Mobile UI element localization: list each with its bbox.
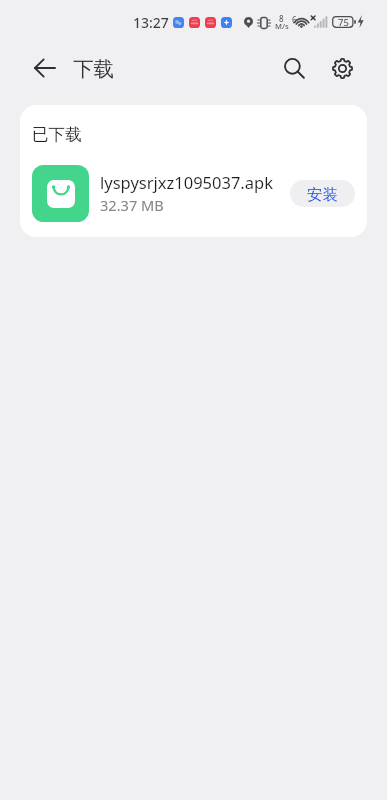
staticText: 安装: [307, 185, 338, 205]
staticText: 6: [292, 14, 297, 25]
staticText: 下载: [73, 56, 114, 82]
staticText: 已下载: [32, 124, 82, 145]
staticText: lyspysrjxz1095037.apk: [100, 171, 273, 193]
button[interactable]: Search: [272, 47, 316, 91]
button[interactable]: Settings: [320, 46, 364, 90]
button[interactable]: Back: [22, 46, 66, 90]
staticText: 13:27: [133, 13, 169, 32]
staticText: M/s: [275, 21, 289, 31]
staticText: 32.37 MB: [100, 195, 164, 215]
staticText: 75: [338, 16, 349, 28]
button[interactable]: 安装: [290, 180, 355, 207]
staticText: 8: [279, 13, 284, 24]
